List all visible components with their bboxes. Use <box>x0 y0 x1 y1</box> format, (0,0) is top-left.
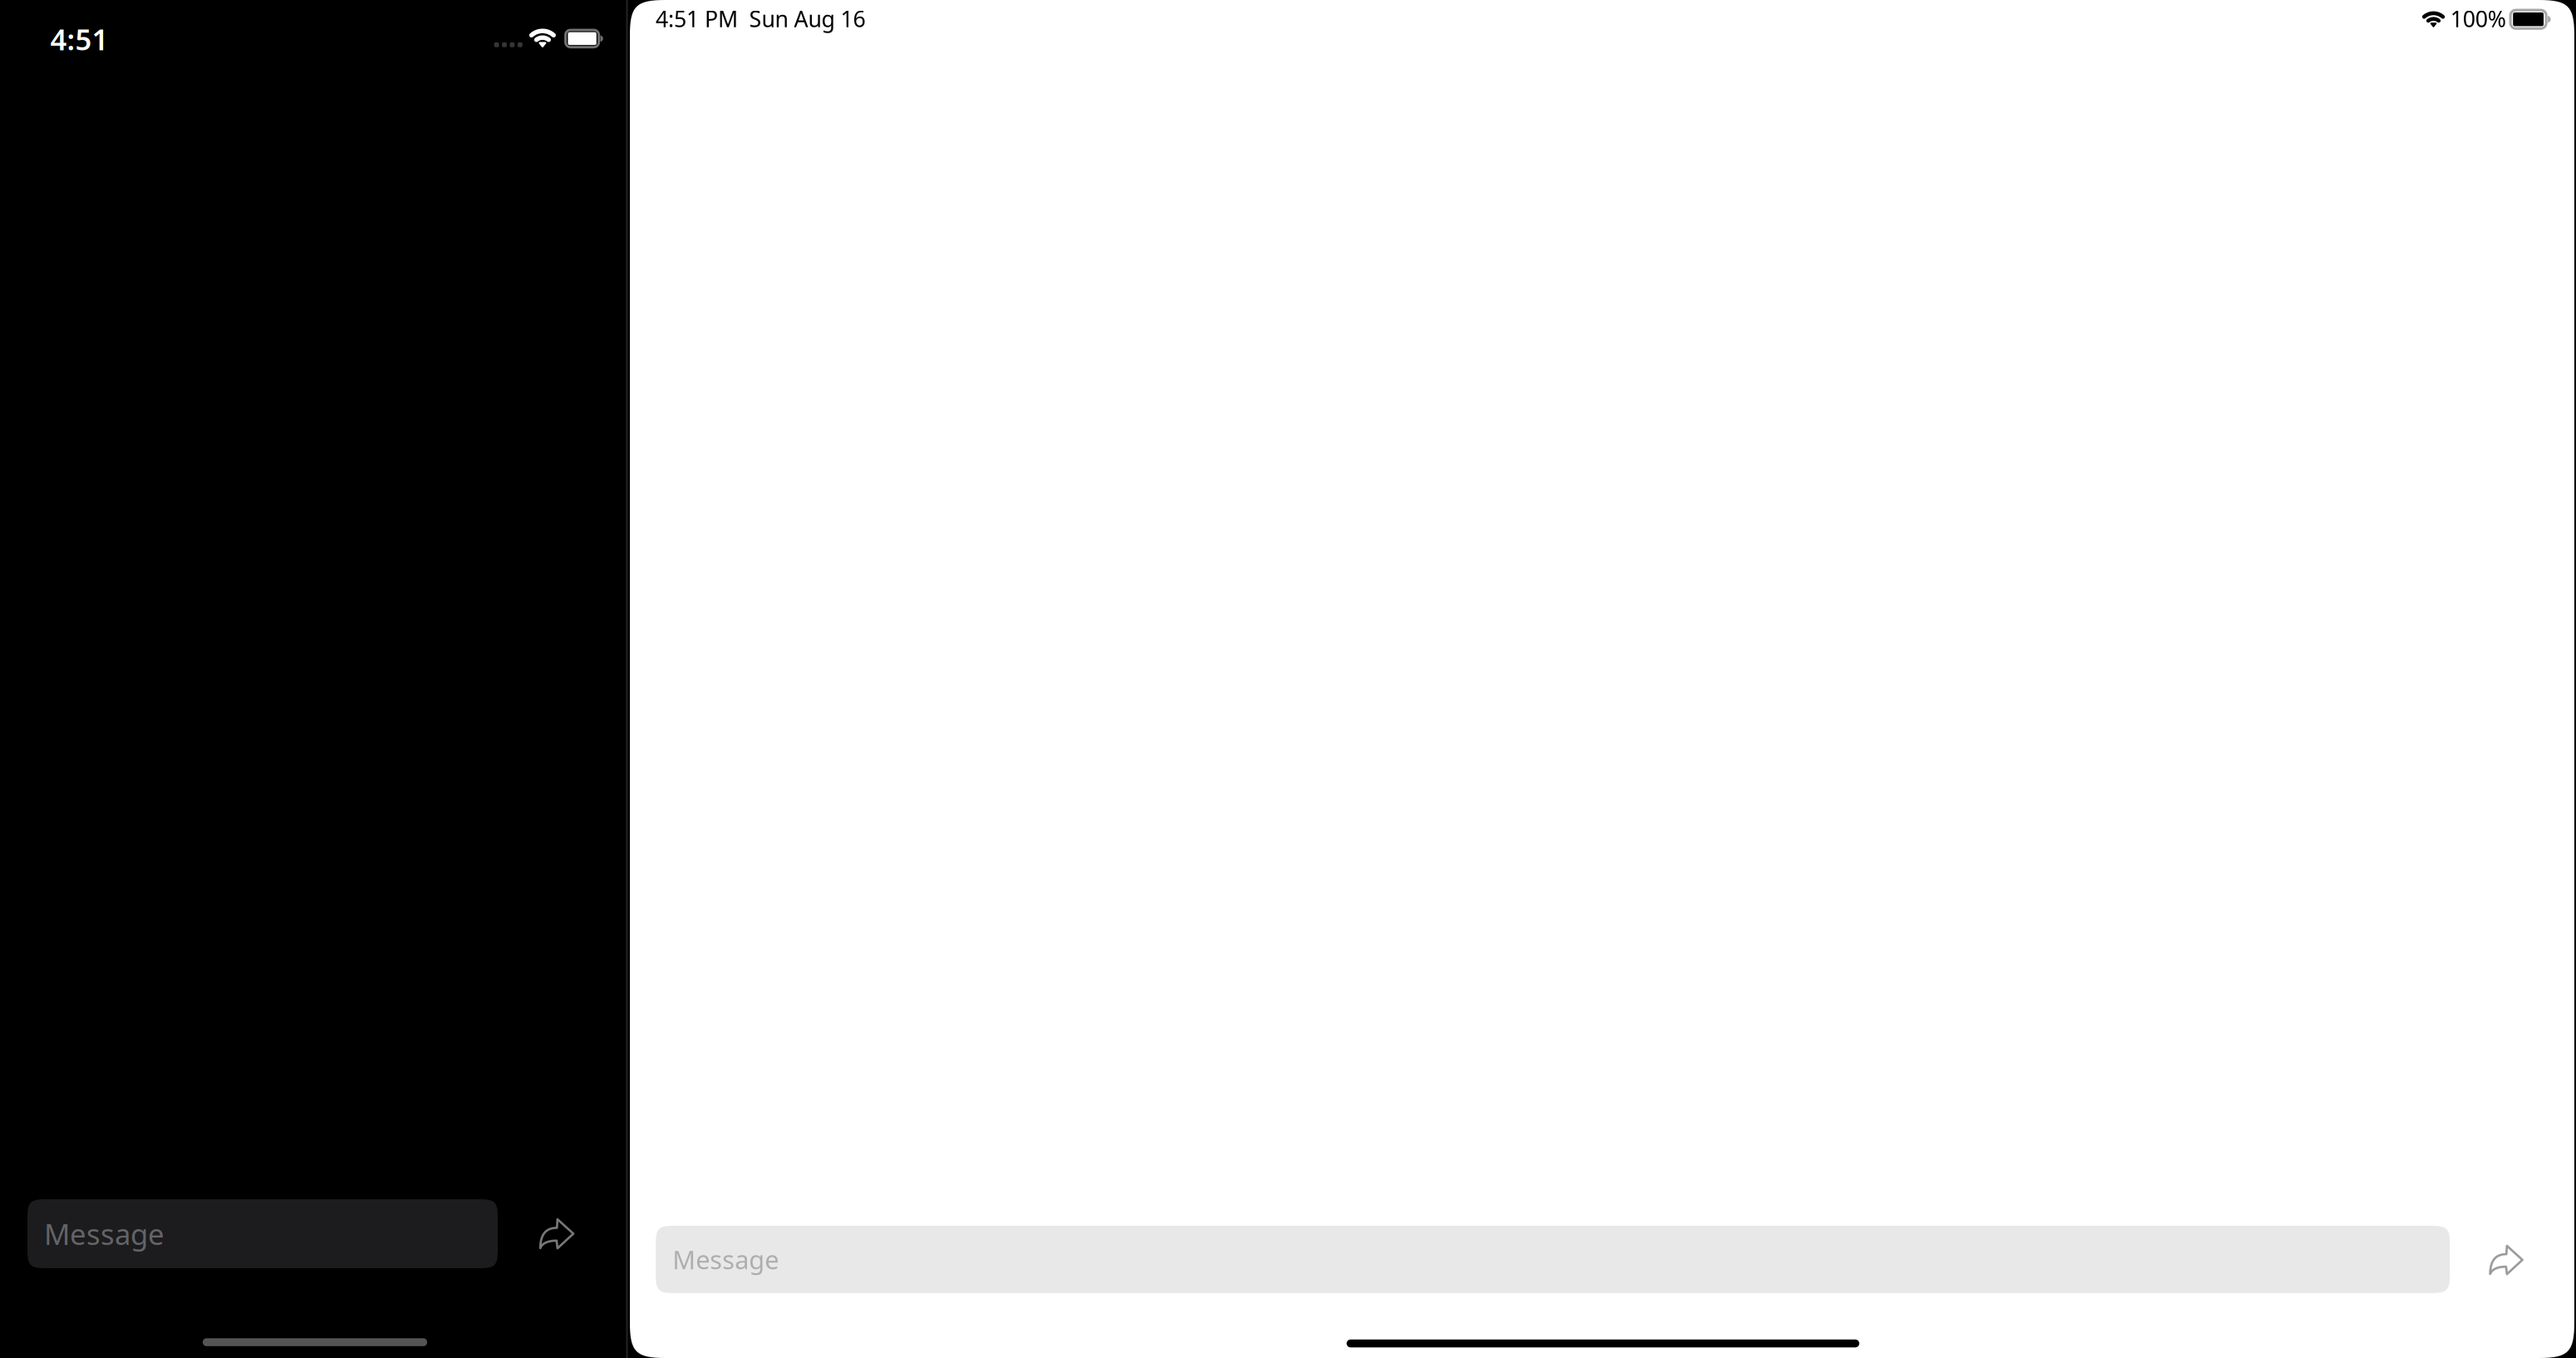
button[interactable]: Send <box>517 1199 596 1268</box>
button[interactable]: Message <box>27 1199 498 1268</box>
staticText: 4:51 <box>50 20 108 58</box>
staticText: Sun Aug 16 <box>749 4 865 33</box>
staticText: 4:51 PM <box>656 4 738 33</box>
staticText: Message <box>672 1242 779 1276</box>
staticText: Message <box>44 1215 165 1253</box>
staticText: 100% <box>2450 4 2506 33</box>
button[interactable]: Send <box>2466 1226 2546 1295</box>
button[interactable]: Message <box>656 1226 2450 1293</box>
